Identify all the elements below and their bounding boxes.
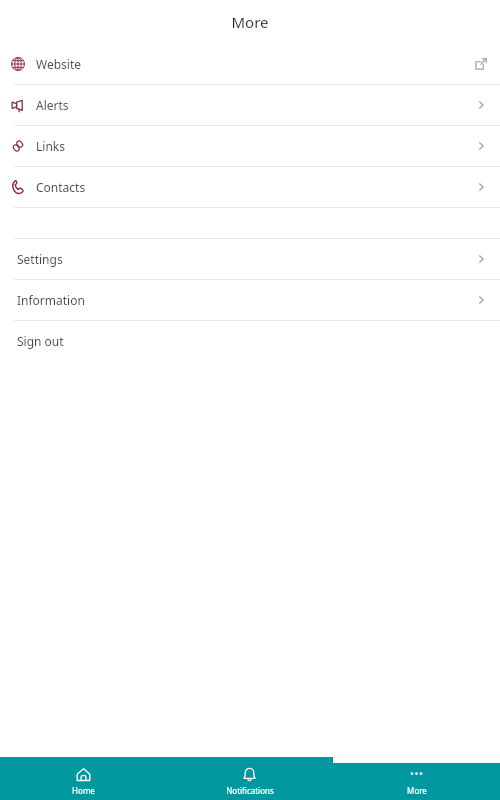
button[interactable]: Notifications (166, 763, 333, 800)
staticText: Alerts (36, 97, 69, 113)
other: Home (76, 767, 91, 782)
staticText: Settings (17, 251, 63, 267)
staticText: Information (17, 292, 85, 308)
staticText: Notifications (226, 785, 274, 796)
other: Open website (474, 57, 488, 71)
button[interactable]: Website (0, 44, 500, 84)
other: Links (11, 139, 25, 153)
other: Alerts (11, 98, 25, 112)
staticText: Home (72, 785, 95, 796)
button[interactable]: More (333, 763, 500, 800)
button[interactable]: Alerts (0, 85, 500, 125)
staticText: Sign out (17, 333, 64, 349)
button[interactable]: Contacts (0, 167, 500, 207)
button[interactable]: Home (0, 763, 166, 800)
staticText: Contacts (36, 179, 86, 195)
button[interactable]: Settings (0, 239, 500, 279)
staticText: Website (36, 56, 82, 72)
other: Notifications (242, 767, 257, 782)
other: Contacts (11, 180, 25, 194)
staticText: More (231, 12, 269, 32)
other: More (409, 767, 424, 782)
button[interactable]: Information (0, 280, 500, 320)
other: Website (11, 57, 25, 71)
button[interactable]: Links (0, 126, 500, 166)
button[interactable]: Sign out (0, 321, 500, 361)
staticText: Links (36, 138, 65, 154)
staticText: More (407, 785, 427, 796)
